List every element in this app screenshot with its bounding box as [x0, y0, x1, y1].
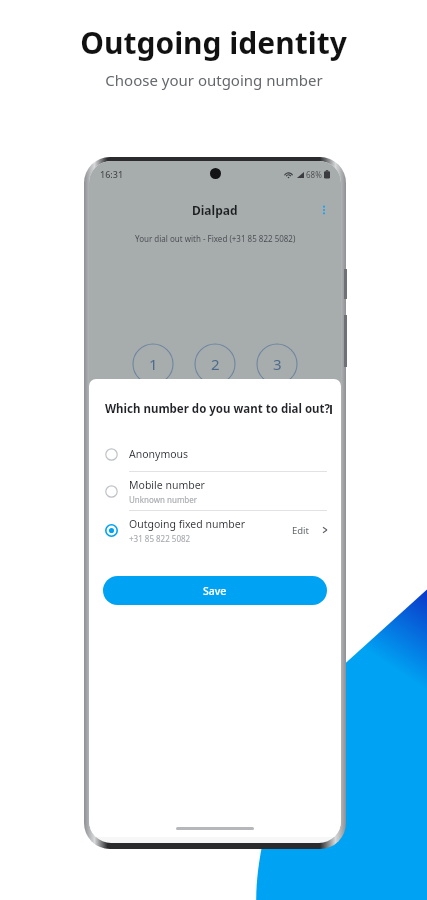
staticText: Choose your outgoing number — [105, 70, 323, 90]
staticText: Save — [203, 584, 227, 598]
staticText: Outgoing identity — [80, 22, 347, 63]
staticText: Edit — [292, 524, 310, 537]
button[interactable]: 1 — [132, 343, 174, 385]
staticText: +31 85 822 5082 — [129, 533, 191, 544]
button[interactable]: Anonymous — [89, 437, 341, 471]
staticText: Mobile number — [129, 478, 205, 492]
button[interactable]: Outgoing fixed number — [89, 511, 341, 549]
staticText: Your dial out with - Fixed (+31 85 822 5… — [135, 233, 296, 244]
staticText: Outgoing fixed number — [129, 517, 245, 531]
button[interactable]: Mobile number — [89, 472, 341, 510]
staticText: Which number do you want to dial out? — [105, 401, 331, 417]
staticText: Unknown number — [129, 494, 198, 505]
button[interactable]: More options — [315, 201, 333, 219]
staticText: 2 — [211, 354, 220, 374]
button[interactable]: 3 — [256, 343, 298, 385]
button[interactable]: 2 — [194, 343, 236, 385]
staticText: 3 — [273, 354, 282, 374]
staticText: 68% — [306, 169, 322, 180]
staticText: Anonymous — [129, 447, 189, 461]
staticText: 1 — [149, 354, 158, 374]
staticText: Dialpad — [192, 202, 238, 218]
staticText: 16:31 — [100, 168, 124, 180]
button[interactable]: Save — [103, 576, 327, 605]
